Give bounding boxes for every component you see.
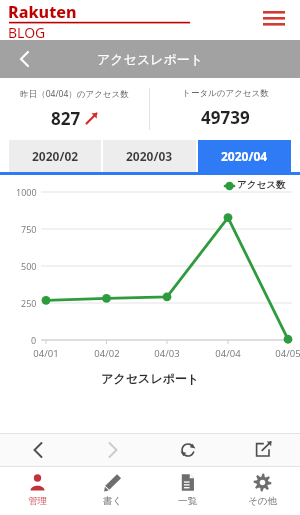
staticText: 1000	[16, 186, 37, 198]
staticText: 2020/03	[126, 148, 173, 164]
staticText: Rakuten	[8, 1, 77, 23]
staticText: トータルのアクセス数	[182, 88, 269, 99]
staticText: アクセスレポート	[101, 371, 199, 386]
staticText: 49739	[201, 106, 250, 129]
staticText: アクセスレポート	[97, 51, 204, 67]
staticText: 04/05	[275, 347, 300, 360]
button[interactable]: 2020/04	[198, 140, 291, 172]
button[interactable]: Menu	[263, 9, 285, 27]
staticText: その他	[248, 495, 277, 507]
staticText: BLOG	[8, 23, 46, 40]
staticText: 750	[21, 223, 37, 235]
button[interactable]: 2020/03	[103, 140, 196, 172]
button[interactable]: Previous page	[0, 434, 75, 466]
staticText: 250	[21, 297, 37, 309]
button[interactable]: 一覧	[150, 467, 225, 515]
button[interactable]: Open in browser	[225, 434, 300, 466]
staticText: 0	[31, 334, 37, 346]
staticText: 04/04	[215, 347, 241, 360]
staticText: 管理	[28, 495, 47, 507]
staticText: 04/03	[154, 347, 180, 360]
staticText: 2020/02	[32, 148, 79, 164]
staticText: 昨日（04/04）のアクセス数	[20, 88, 129, 100]
staticText: 827	[51, 107, 81, 130]
staticText: 書く	[103, 495, 123, 507]
button[interactable]: Reload	[150, 434, 225, 466]
staticText: 2020/04	[221, 148, 268, 164]
button[interactable]: その他	[225, 467, 300, 515]
staticText: 一覧	[178, 495, 197, 507]
button[interactable]: 書く	[75, 467, 150, 515]
button[interactable]: 2020/02	[9, 140, 101, 172]
button[interactable]: 管理	[0, 467, 75, 515]
staticText: 04/01	[33, 347, 59, 360]
staticText: アクセス数	[237, 179, 286, 191]
button[interactable]: Next page	[75, 434, 150, 466]
staticText: 04/02	[94, 347, 120, 360]
staticText: 500	[21, 260, 37, 272]
button[interactable]: Back	[8, 44, 38, 74]
